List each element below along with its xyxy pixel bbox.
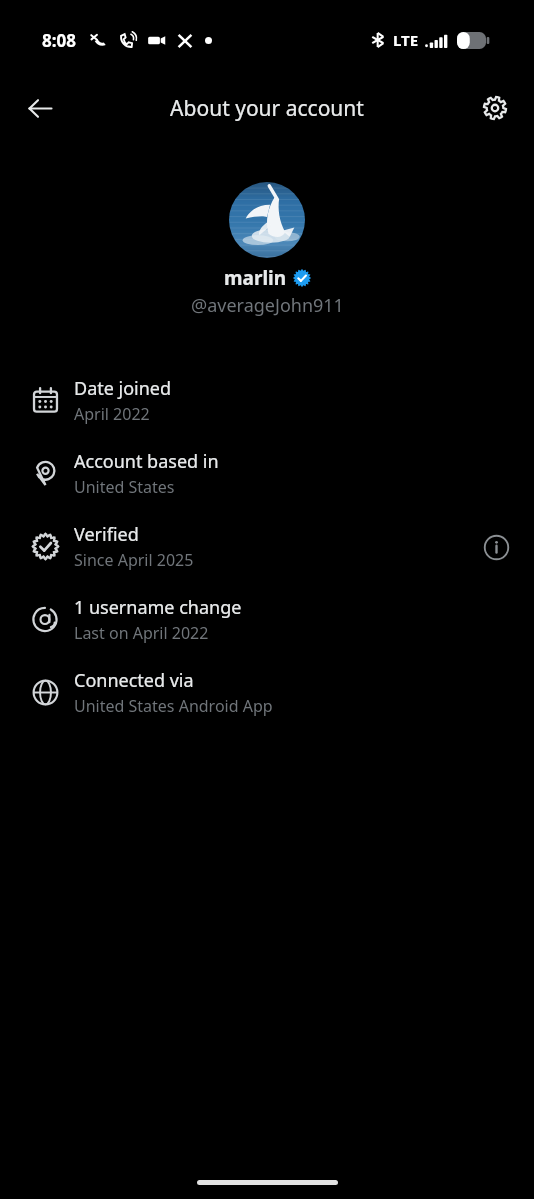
staticText: LTE bbox=[393, 30, 419, 50]
staticText: Date joined bbox=[74, 376, 172, 401]
staticText: Since April 2025 bbox=[74, 549, 194, 571]
staticText: 1 username change bbox=[74, 595, 242, 620]
staticText: 8:08 bbox=[42, 29, 76, 52]
button[interactable]: Date joined bbox=[0, 364, 534, 437]
button[interactable]: Connected via bbox=[0, 656, 534, 729]
staticText: Last on April 2022 bbox=[74, 622, 209, 644]
button[interactable]: Verified bbox=[0, 510, 534, 583]
staticText: April 2022 bbox=[74, 403, 150, 425]
staticText: Verified bbox=[74, 522, 139, 547]
staticText: Connected via bbox=[74, 668, 194, 693]
button[interactable]: 1 username change bbox=[0, 583, 534, 656]
button[interactable]: Settings bbox=[471, 84, 519, 132]
staticText: About your account bbox=[170, 94, 364, 123]
staticText: United States bbox=[74, 476, 175, 498]
button[interactable]: Account based in bbox=[0, 437, 534, 510]
staticText: United States Android App bbox=[74, 695, 273, 717]
staticText: Account based in bbox=[74, 449, 219, 474]
staticText: marlin bbox=[224, 265, 287, 291]
button[interactable]: Back bbox=[16, 84, 64, 132]
staticText: @averageJohn911 bbox=[191, 293, 344, 318]
button[interactable]: More info bbox=[474, 525, 518, 569]
